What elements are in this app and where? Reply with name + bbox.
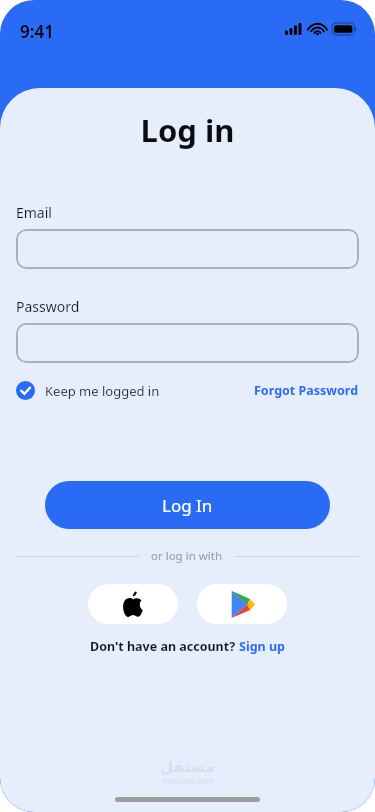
staticText: Sign up: [239, 638, 285, 655]
staticText: Log In: [162, 494, 213, 517]
staticText: Password: [16, 297, 80, 316]
button[interactable]: Sign in with Apple: [88, 584, 178, 624]
staticText: Log in: [0, 109, 375, 151]
staticText: Forgot Password: [254, 382, 359, 399]
staticText: mostaql.com: [162, 775, 214, 787]
button[interactable]: [16, 323, 359, 363]
button[interactable]: Sign in with Google Play: [197, 584, 287, 624]
button[interactable]: [16, 229, 359, 269]
staticText: Email: [16, 203, 52, 222]
button[interactable]: Keep me logged in: [16, 381, 164, 400]
button[interactable]: Sign up: [239, 638, 285, 655]
staticText: مستقل: [160, 758, 215, 775]
button[interactable]: Forgot Password: [254, 382, 359, 399]
staticText: 9:41: [20, 20, 54, 43]
button[interactable]: Log In: [45, 481, 330, 529]
staticText: or log in with: [151, 548, 223, 564]
staticText: Don't have an account?: [90, 638, 239, 655]
staticText: Keep me logged in: [45, 382, 160, 400]
